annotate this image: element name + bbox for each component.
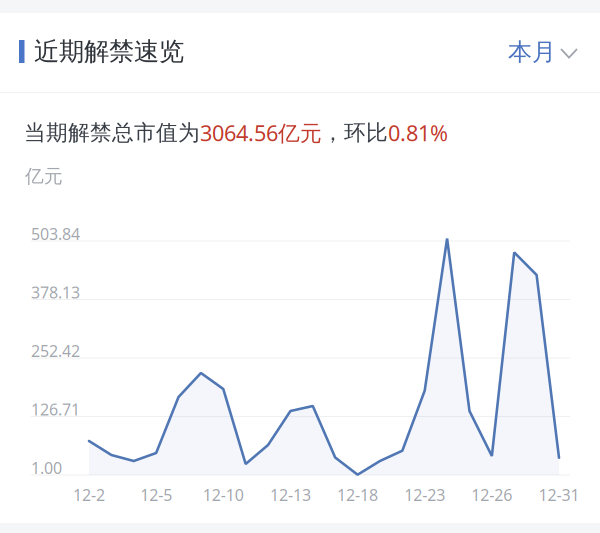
staticText: 12-18 xyxy=(337,484,378,506)
staticText: 0.81% xyxy=(388,118,448,147)
staticText: 503.84 xyxy=(31,223,80,245)
staticText: 12-5 xyxy=(140,484,172,506)
staticText: 12-13 xyxy=(270,484,311,506)
staticText: 亿元 xyxy=(25,164,63,188)
staticText: 252.42 xyxy=(31,340,80,362)
staticText: 3064.56亿元 xyxy=(200,118,322,147)
staticText: 12-26 xyxy=(471,484,512,506)
staticText: 126.71 xyxy=(31,398,80,420)
staticText: 12-31 xyxy=(538,484,579,506)
staticText: 当期解禁总市值为 xyxy=(24,119,200,146)
button[interactable]: 本月 xyxy=(505,30,591,74)
staticText: 1.00 xyxy=(31,457,62,479)
staticText: 12-10 xyxy=(203,484,244,506)
staticText: 本月 xyxy=(508,37,556,67)
staticText: 12-23 xyxy=(404,484,445,506)
staticText: ，环比 xyxy=(322,119,388,146)
staticText: 378.13 xyxy=(31,281,80,303)
staticText: 近期解禁速览 xyxy=(34,35,184,67)
staticText: 12-2 xyxy=(73,484,105,506)
